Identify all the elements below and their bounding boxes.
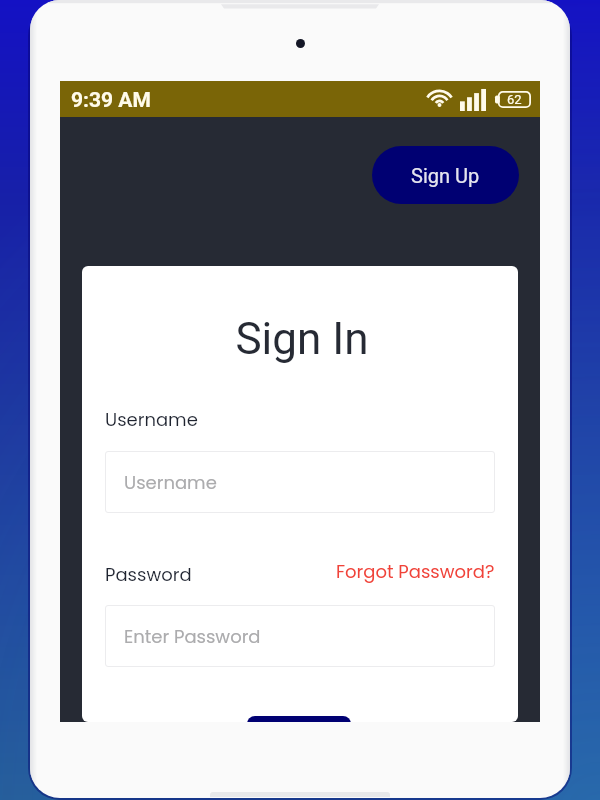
other: Wi-Fi xyxy=(427,89,452,108)
staticText: Username xyxy=(124,470,217,495)
button[interactable]: Sign Up xyxy=(372,146,519,204)
button[interactable]: Login xyxy=(247,716,351,722)
staticText: Forgot Password? xyxy=(336,559,495,584)
staticText: 9:39 AM xyxy=(71,88,151,113)
staticText: 62 xyxy=(507,92,522,107)
button[interactable]: Enter Password xyxy=(105,605,495,667)
other: Signal strength xyxy=(460,89,486,111)
staticText: Sign Up xyxy=(411,164,480,187)
staticText: Sign In xyxy=(84,313,518,365)
staticText: Password xyxy=(105,562,192,587)
other: Battery 62 percent xyxy=(495,91,531,108)
button[interactable]: Forgot Password? xyxy=(315,556,495,586)
staticText: Username xyxy=(105,407,198,432)
button[interactable]: Username xyxy=(105,451,495,513)
staticText: Enter Password xyxy=(124,624,261,649)
